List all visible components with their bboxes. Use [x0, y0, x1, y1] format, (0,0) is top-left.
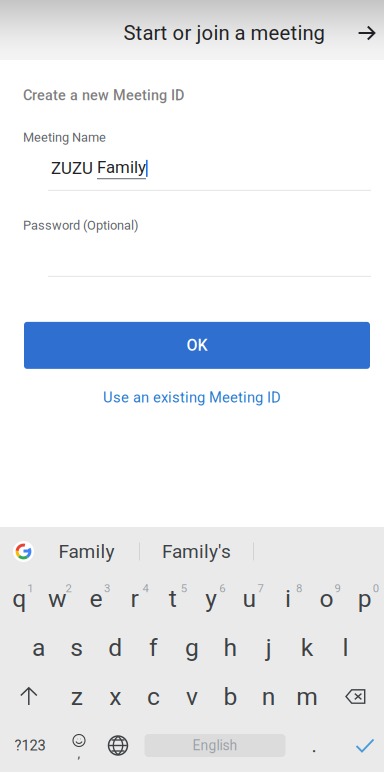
staticText: 1: [27, 582, 33, 595]
staticText: OK: [186, 336, 207, 355]
button[interactable]: m: [288, 672, 326, 721]
button[interactable]: Done: [343, 721, 384, 770]
button[interactable]: v: [173, 672, 211, 721]
staticText: 5: [181, 582, 187, 595]
button[interactable]: Use an existing Meeting ID: [99, 385, 285, 410]
button[interactable]: l: [326, 623, 365, 672]
staticText: r: [130, 584, 138, 613]
button[interactable]: Continue: [349, 2, 383, 58]
button[interactable]: d: [96, 623, 134, 672]
staticText: t: [169, 584, 177, 613]
staticText: 2: [66, 582, 72, 595]
staticText: Password (Optional): [23, 218, 138, 233]
button[interactable]: z: [58, 672, 96, 721]
staticText: b: [223, 682, 237, 711]
staticText: m: [296, 682, 318, 711]
button[interactable]: c: [134, 672, 173, 721]
staticText: 9: [334, 582, 340, 595]
staticText: k: [301, 633, 314, 662]
button[interactable]: w: [38, 574, 77, 623]
button[interactable]: u: [230, 574, 269, 623]
staticText: l: [343, 633, 349, 662]
staticText: Create a new Meeting ID: [23, 87, 184, 104]
staticText: f: [149, 633, 158, 662]
staticText: 7: [258, 582, 264, 595]
button[interactable]: Shift: [0, 672, 58, 721]
button[interactable]: a: [19, 623, 58, 672]
button[interactable]: h: [211, 623, 250, 672]
staticText: .: [311, 734, 316, 757]
staticText: i: [285, 584, 291, 613]
staticText: ?123: [14, 737, 45, 754]
button[interactable]: r: [115, 574, 154, 623]
button[interactable]: y: [192, 574, 230, 623]
staticText: Family: [58, 540, 114, 563]
staticText: a: [32, 633, 45, 662]
staticText: j: [266, 633, 272, 662]
staticText: Family's: [162, 540, 231, 563]
button[interactable]: e: [77, 574, 115, 623]
button[interactable]: s: [58, 623, 96, 672]
staticText: u: [243, 584, 257, 613]
staticText: 8: [296, 582, 302, 595]
staticText: d: [108, 633, 122, 662]
staticText: English: [192, 737, 237, 754]
staticText: q: [12, 584, 26, 613]
button[interactable]: Emoji: [60, 721, 98, 770]
staticText: o: [319, 584, 333, 613]
staticText: c: [147, 682, 160, 711]
staticText: 4: [142, 582, 148, 595]
button[interactable]: b: [211, 672, 250, 721]
button[interactable]: j: [250, 623, 288, 672]
staticText: Meeting Name: [23, 130, 106, 145]
button[interactable]: t: [154, 574, 192, 623]
button[interactable]: Family's: [140, 529, 253, 574]
staticText: ZUZU: [51, 158, 97, 178]
button[interactable]: g: [173, 623, 211, 672]
button[interactable]: o: [307, 574, 346, 623]
button[interactable]: OK: [24, 322, 370, 369]
staticText: 3: [104, 582, 110, 595]
staticText: v: [186, 682, 198, 711]
staticText: Start or join a meeting: [123, 21, 324, 45]
staticText: s: [70, 633, 83, 662]
staticText: Family: [97, 157, 146, 177]
staticText: Use an existing Meeting ID: [103, 389, 281, 406]
button[interactable]: p: [346, 574, 384, 623]
staticText: n: [262, 682, 276, 711]
staticText: h: [223, 633, 237, 662]
staticText: x: [109, 682, 121, 711]
button[interactable]: Family: [34, 529, 139, 574]
staticText: w: [48, 584, 67, 613]
staticText: g: [185, 633, 199, 662]
staticText: e: [89, 584, 102, 613]
button[interactable]: n: [250, 672, 288, 721]
button[interactable]: Space: [144, 734, 285, 757]
button[interactable]: x: [96, 672, 134, 721]
button[interactable]: k: [288, 623, 326, 672]
button[interactable]: i: [269, 574, 307, 623]
staticText: z: [71, 682, 83, 711]
button[interactable]: Switch keyboard language: [98, 721, 138, 770]
button[interactable]: q: [0, 574, 38, 623]
button[interactable]: f: [134, 623, 173, 672]
staticText: 6: [219, 582, 225, 595]
button[interactable]: ?123: [0, 721, 60, 770]
staticText: y: [205, 584, 217, 613]
button[interactable]: Backspace: [326, 672, 384, 721]
button[interactable]: .: [294, 721, 334, 770]
staticText: ,: [77, 745, 80, 761]
staticText: 0: [373, 582, 379, 595]
staticText: p: [358, 584, 372, 613]
